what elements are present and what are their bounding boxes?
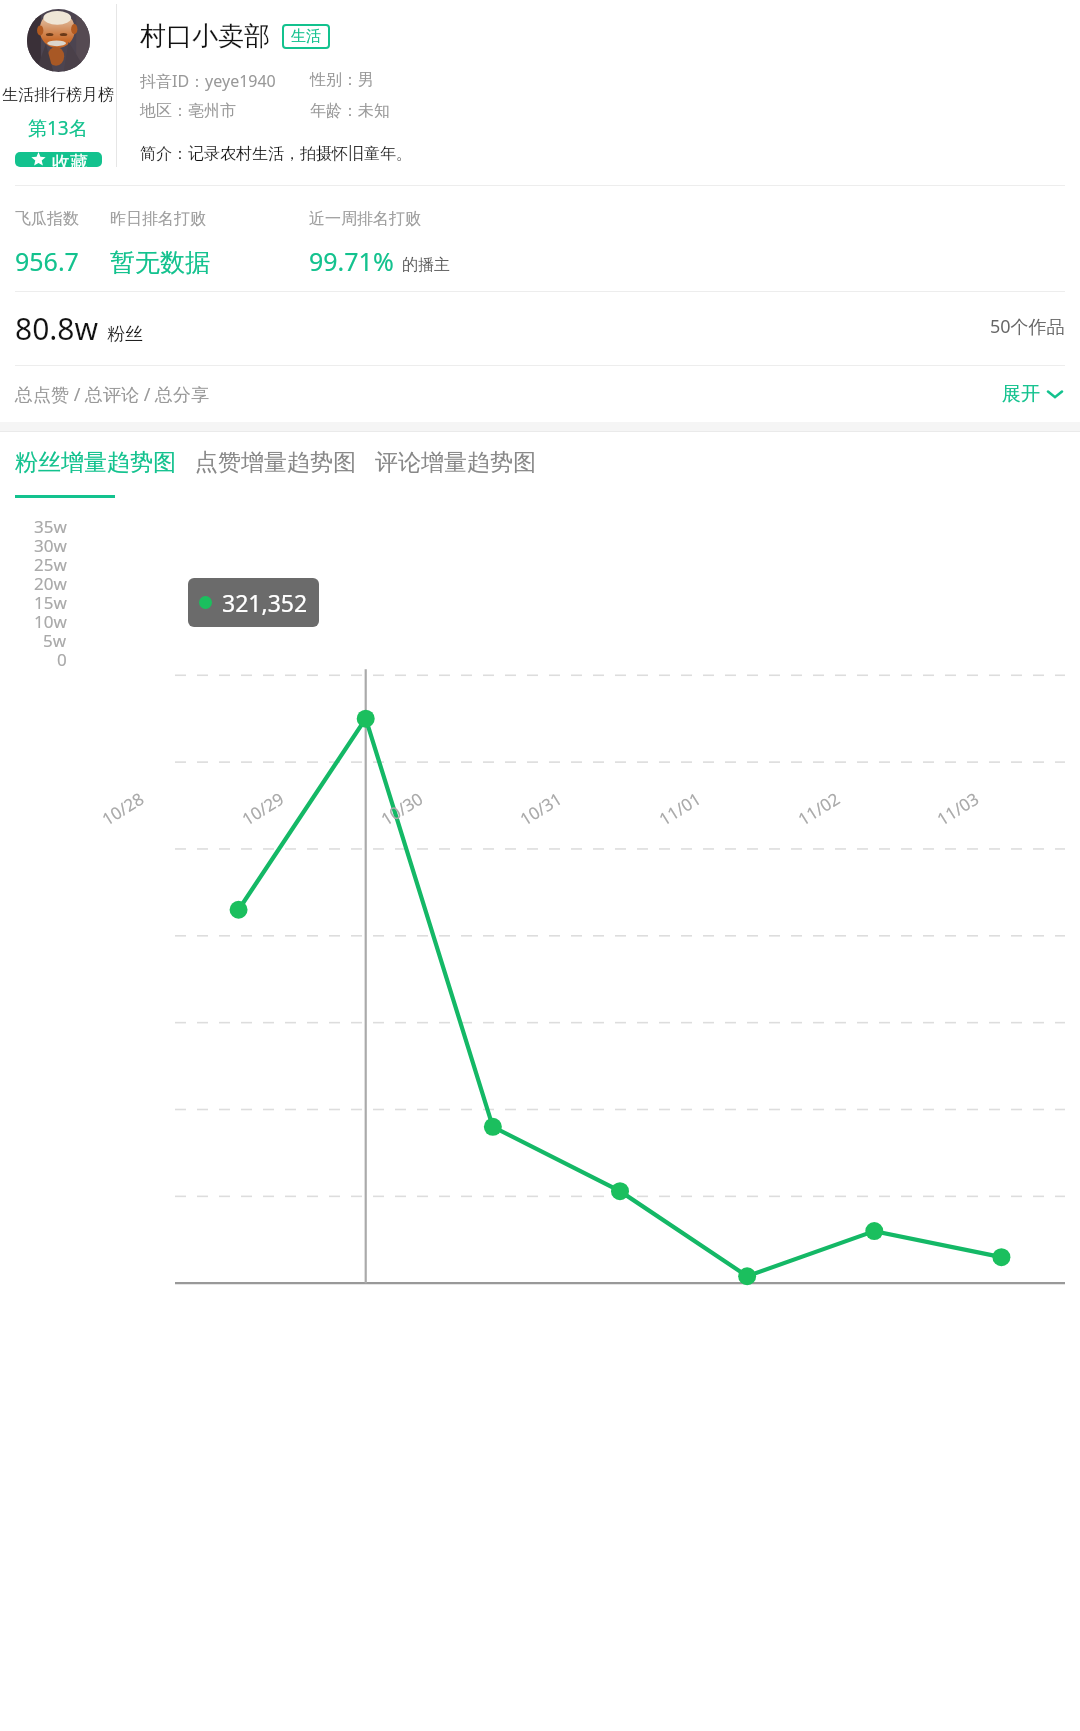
staticText: 10/29 (237, 787, 289, 830)
button[interactable]: Profile avatar (27, 9, 90, 72)
staticText: 的播主 (402, 255, 450, 275)
staticText: 10w (34, 610, 67, 629)
staticText: 展开 (1002, 382, 1040, 406)
staticText: 99.71% (309, 244, 394, 278)
staticText: 评论增量趋势图 (375, 448, 536, 477)
staticText: 30w (34, 534, 67, 553)
staticText: 11/01 (654, 787, 706, 830)
button[interactable]: 评论增量趋势图 (375, 432, 536, 492)
staticText: 10/30 (376, 787, 428, 830)
staticText: 50个作品 (990, 314, 1065, 339)
staticText: 80.8w (15, 308, 99, 349)
staticText: 15w (34, 591, 67, 610)
staticText: 11/02 (793, 787, 845, 830)
staticText: 生活排行榜月榜 (2, 85, 114, 105)
staticText: 321,352 (222, 587, 308, 618)
staticText: 简介：记录农村生活，拍摄怀旧童年。 (140, 144, 412, 164)
staticText: 年龄：未知 (310, 101, 390, 121)
staticText: 飞瓜指数 (15, 209, 97, 229)
staticText: 第13名 (28, 115, 88, 141)
staticText: 暂无数据 (110, 247, 309, 278)
staticText: 0 (57, 648, 67, 667)
staticText: 11/03 (932, 787, 984, 830)
staticText: 点赞增量趋势图 (195, 448, 356, 477)
staticText: 村口小卖部 (140, 20, 270, 53)
staticText: 性别：男 (310, 70, 374, 90)
staticText: 地区：亳州市 (140, 101, 310, 121)
staticText: 总点赞 / 总评论 / 总分享 (15, 382, 210, 407)
staticText: 抖音ID：yeye1940 (140, 70, 310, 92)
button[interactable]: 点赞增量趋势图 (195, 432, 356, 492)
staticText: 25w (34, 553, 67, 572)
staticText: 近一周排名打败 (309, 209, 421, 229)
staticText: 收藏 (52, 152, 88, 167)
staticText: 昨日排名打败 (110, 209, 230, 229)
button[interactable]: 80.8w (0, 292, 1080, 365)
staticText: 粉丝 (107, 323, 143, 346)
staticText: 5w (43, 629, 67, 648)
staticText: 10/31 (515, 787, 567, 830)
staticText: 10/28 (97, 787, 149, 830)
staticText: 956.7 (15, 244, 110, 278)
staticText: 粉丝增量趋势图 (15, 448, 176, 477)
staticText: 35w (34, 515, 67, 534)
button[interactable]: 收藏 (15, 152, 102, 167)
button[interactable]: 粉丝增量趋势图 (15, 432, 176, 492)
staticText: 20w (34, 572, 67, 591)
staticText: 生活 (291, 27, 321, 46)
button[interactable]: 总点赞 / 总评论 / 总分享 (0, 366, 1080, 422)
